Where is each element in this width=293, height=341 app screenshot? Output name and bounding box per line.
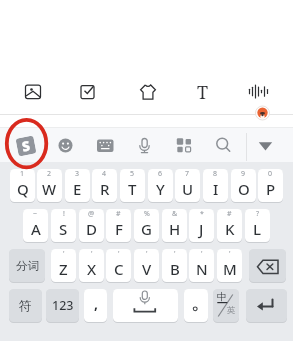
button[interactable]: 中 <box>213 289 239 322</box>
button[interactable]: 0 <box>258 169 283 202</box>
button[interactable]: # <box>106 209 131 242</box>
staticText: B <box>170 259 180 279</box>
staticText: 2 <box>47 169 52 179</box>
button[interactable]: , <box>84 289 107 322</box>
button[interactable] <box>168 130 200 160</box>
button[interactable] <box>128 130 160 160</box>
staticText: L <box>253 219 262 239</box>
staticText: I <box>213 179 219 199</box>
staticText: , <box>94 294 98 313</box>
staticText: E <box>73 179 82 199</box>
staticText: ' <box>118 249 120 259</box>
button[interactable]: @ <box>79 209 104 242</box>
button[interactable]: 123 <box>46 289 79 322</box>
staticText: T <box>197 80 209 102</box>
button[interactable]: ' <box>134 249 159 282</box>
button[interactable]: 1 <box>10 169 35 202</box>
staticText: 英 <box>227 305 236 316</box>
staticText: 符 <box>19 298 32 314</box>
button[interactable]: & <box>162 209 187 242</box>
staticText: T <box>128 179 137 199</box>
staticText: 123 <box>52 297 74 314</box>
button[interactable]: ~ <box>23 209 48 242</box>
button[interactable] <box>49 130 81 160</box>
button[interactable]: # <box>217 209 242 242</box>
staticText: 分词 <box>16 259 39 273</box>
staticText: # <box>227 209 232 219</box>
button[interactable] <box>246 289 287 322</box>
button[interactable] <box>78 82 98 102</box>
staticText: * <box>200 209 204 219</box>
staticText: 4 <box>102 169 107 179</box>
staticText: X <box>87 259 97 279</box>
button[interactable]: 5 <box>120 169 145 202</box>
button[interactable]: ' <box>106 249 131 282</box>
staticText: N <box>196 259 208 279</box>
button[interactable] <box>246 130 278 160</box>
staticText: 9 <box>241 169 246 179</box>
staticText: W <box>42 179 57 199</box>
button[interactable]: ? <box>245 209 270 242</box>
button[interactable]: 4 <box>92 169 117 202</box>
staticText: H <box>169 219 181 239</box>
staticText: D <box>86 219 97 239</box>
staticText: & <box>172 209 178 219</box>
button[interactable]: ' <box>51 249 76 282</box>
button[interactable] <box>248 82 268 102</box>
button[interactable]: ' <box>162 249 187 282</box>
button[interactable] <box>113 289 178 322</box>
button[interactable] <box>10 130 42 160</box>
staticText: F <box>115 219 123 239</box>
button[interactable]: 3 <box>65 169 90 202</box>
staticText: 5 <box>130 169 135 179</box>
staticText: R <box>100 179 110 199</box>
staticText: G <box>141 219 152 239</box>
button[interactable]: % <box>134 209 159 242</box>
button[interactable]: ' <box>79 249 104 282</box>
button[interactable]: 2 <box>37 169 62 202</box>
staticText: A <box>31 219 41 239</box>
staticText: # <box>116 209 121 219</box>
staticText: Y <box>156 179 165 199</box>
button[interactable]: 7 <box>175 169 200 202</box>
staticText: 0 <box>268 169 273 179</box>
staticText: S <box>59 219 68 239</box>
button[interactable] <box>207 130 239 160</box>
staticText: 中 <box>217 290 227 303</box>
staticText: S <box>20 136 32 156</box>
button[interactable] <box>23 82 43 102</box>
staticText: ? <box>256 209 260 219</box>
button[interactable]: 9 <box>231 169 256 202</box>
button[interactable]: ! <box>51 209 76 242</box>
button[interactable] <box>138 82 158 102</box>
staticText: V <box>142 259 152 279</box>
staticText: ' <box>146 249 148 259</box>
staticText: M <box>223 259 237 279</box>
staticText: ' <box>91 249 93 259</box>
staticText: ! <box>63 209 65 219</box>
button[interactable] <box>249 249 286 282</box>
staticText: % <box>144 209 150 219</box>
button[interactable]: 6 <box>148 169 173 202</box>
staticText: ' <box>63 249 65 259</box>
staticText: Q <box>17 179 29 199</box>
staticText: ' <box>201 249 203 259</box>
staticText: ' <box>229 249 231 259</box>
staticText: ' <box>174 249 176 259</box>
button[interactable]: S <box>15 135 36 156</box>
button[interactable]: ' <box>189 249 214 282</box>
staticText: 3 <box>75 169 80 179</box>
staticText: K <box>225 219 235 239</box>
button[interactable]: T <box>195 80 211 102</box>
button[interactable]: ' <box>217 249 242 282</box>
button[interactable]: * <box>189 209 214 242</box>
button[interactable]: 符 <box>9 289 42 322</box>
staticText: C <box>114 259 124 279</box>
staticText: O <box>238 179 250 199</box>
button[interactable]: 分词 <box>9 249 45 282</box>
button[interactable]: 8 <box>203 169 228 202</box>
button[interactable] <box>184 289 208 322</box>
staticText: 6 <box>158 169 163 179</box>
button[interactable] <box>89 130 121 160</box>
staticText: ~ <box>33 209 38 219</box>
